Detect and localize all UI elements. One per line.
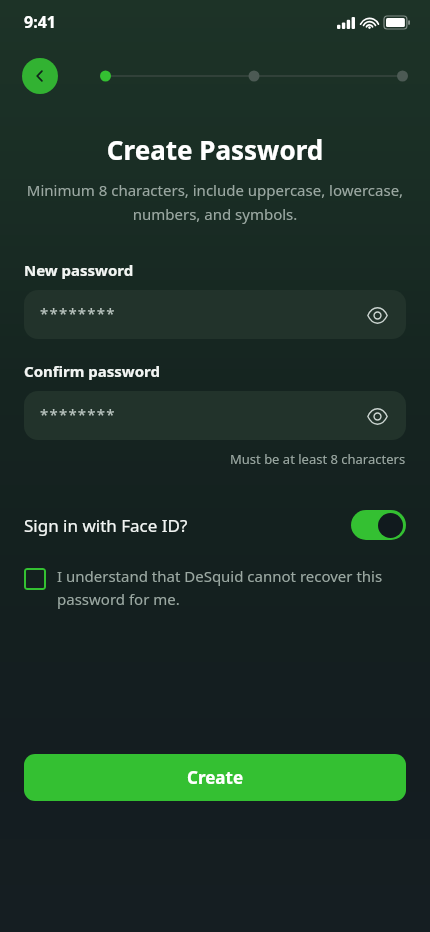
button[interactable]: ******** — [24, 290, 406, 339]
button[interactable]: Show password — [360, 298, 394, 332]
staticText: Create — [187, 766, 244, 789]
button[interactable]: Sign in with Face ID toggle — [351, 510, 406, 540]
button[interactable]: Back — [22, 58, 58, 94]
staticText: Minimum 8 characters, include uppercase,… — [24, 180, 406, 224]
staticText: Must be at least 8 characters — [230, 450, 406, 468]
button[interactable]: ******** — [24, 391, 406, 440]
staticText: Sign in with Face ID? — [24, 514, 351, 537]
button[interactable]: I understand that DeSquid cannot recover… — [0, 566, 430, 609]
staticText: Confirm password — [24, 361, 160, 381]
staticText: ******** — [40, 404, 116, 424]
staticText: I understand that DeSquid cannot recover… — [57, 566, 390, 609]
button[interactable]: Create — [24, 754, 406, 801]
staticText: Create Password — [0, 132, 430, 167]
staticText: New password — [24, 260, 134, 280]
staticText: 9:41 — [24, 11, 56, 33]
button[interactable]: Show password — [360, 399, 394, 433]
staticText: ******** — [40, 303, 116, 323]
button[interactable]: Sign in with Face ID? — [0, 502, 430, 548]
